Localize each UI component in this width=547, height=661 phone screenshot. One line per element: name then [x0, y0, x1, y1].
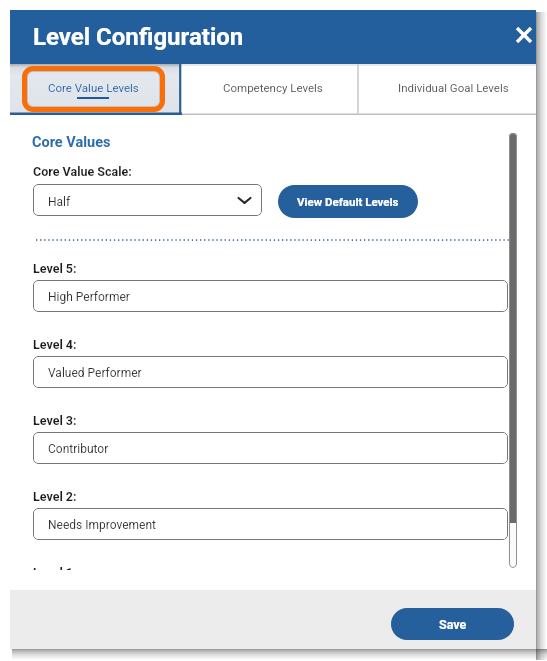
button[interactable]: Competency Levels [181, 64, 358, 115]
staticText: View Default Levels [297, 195, 399, 208]
button[interactable]: High Performer [33, 280, 508, 312]
staticText: Level 4: [33, 337, 77, 352]
button[interactable]: Individual Goal Levels [358, 64, 536, 115]
staticText: Half [48, 195, 71, 209]
staticText: Core Value Levels [48, 81, 139, 94]
staticText: Level Configuration [33, 23, 244, 51]
button[interactable]: Half [33, 184, 262, 216]
staticText: Individual Goal Levels [398, 81, 509, 94]
staticText: Contributor [48, 442, 109, 456]
staticText: Valued Performer [48, 366, 142, 380]
staticText: Core Values [32, 134, 111, 151]
staticText: Level 5: [33, 261, 77, 276]
staticText: Level 3: [33, 413, 77, 428]
staticText: Save [439, 617, 467, 632]
button[interactable]: Contributor [33, 432, 508, 464]
button[interactable]: Close dialog [512, 23, 536, 47]
staticText: Level 1: [33, 565, 77, 570]
button[interactable]: Needs Improvement [33, 508, 508, 540]
staticText: Level 2: [33, 489, 77, 504]
button[interactable]: View Default Levels [278, 185, 418, 218]
button[interactable]: Valued Performer [33, 356, 508, 388]
staticText: Competency Levels [223, 81, 323, 94]
staticText: High Performer [48, 290, 130, 304]
button[interactable]: Core Value Levels [10, 64, 181, 115]
staticText: Needs Improvement [48, 518, 156, 532]
button[interactable]: Save [391, 608, 514, 640]
staticText: Core Value Scale: [33, 164, 132, 179]
